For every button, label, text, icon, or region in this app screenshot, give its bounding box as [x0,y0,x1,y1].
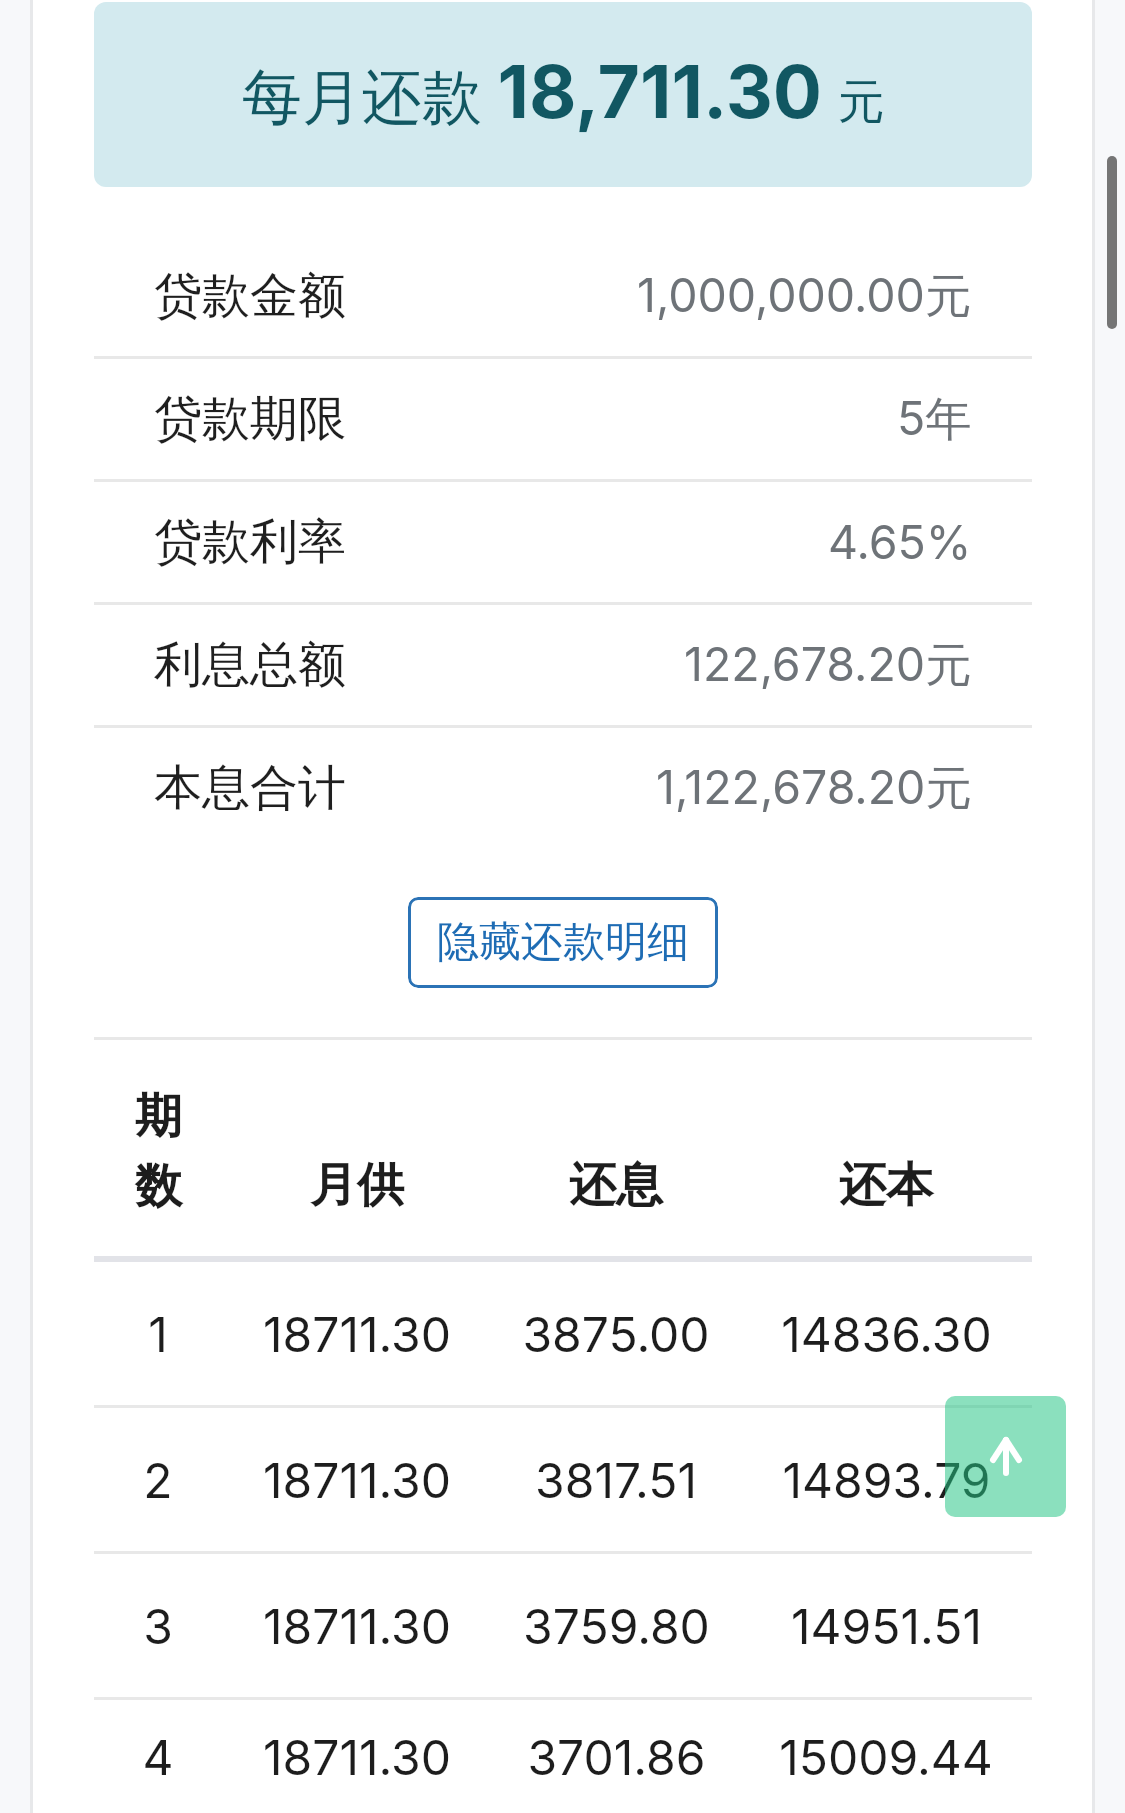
staticText: 1,000,000.00元 [637,267,972,326]
button[interactable]: 本息合计 [94,728,1032,848]
staticText: 14951.51 [791,1597,982,1655]
staticText: 15009.44 [779,1728,993,1786]
staticText: 期 数 [135,1087,182,1215]
staticText: 2 [143,1451,173,1509]
staticText: 1,122,678.20元 [656,759,972,818]
button[interactable]: 2 [94,1408,1032,1551]
staticText: 贷款期限 [154,389,346,449]
button[interactable]: 隐藏还款明细 [408,897,718,988]
button[interactable]: 利息总额 [94,605,1032,725]
button[interactable]: 1 [94,1262,1032,1405]
staticText: 每月还款 18,711.30 元 [242,47,885,136]
staticText: 4.65% [828,514,972,570]
staticText: 122,678.20元 [684,636,972,695]
staticText: 3759.80 [523,1597,710,1655]
staticText: 4 [142,1728,174,1786]
button[interactable]: 贷款利率 [94,482,1032,602]
staticText: 18711.30 [263,1451,451,1509]
staticText: 还本 [839,1156,933,1215]
staticText: 3817.51 [535,1451,697,1509]
staticText: 5年 [897,390,972,449]
button[interactable]: 贷款期限 [94,359,1032,479]
staticText: 18711.30 [263,1728,451,1786]
button[interactable]: Scroll to top [945,1396,1066,1517]
staticText: 18711.30 [263,1597,451,1655]
staticText: 本息合计 [154,758,346,818]
staticText: 贷款利率 [154,512,346,572]
button[interactable]: 3 [94,1554,1032,1697]
staticText: 3875.00 [522,1305,710,1363]
staticText: 贷款金额 [154,266,346,326]
button[interactable]: 贷款金额 [94,236,1032,356]
staticText: 1 [148,1305,168,1363]
staticText: 3 [143,1597,173,1655]
staticText: 3701.86 [527,1728,706,1786]
button[interactable]: 4 [94,1700,1032,1813]
button[interactable]: 每月还款 18,711.30 元 [94,2,1032,187]
staticText: 14893.79 [782,1451,991,1509]
staticText: 隐藏还款明细 [437,916,689,969]
staticText: 月供 [310,1156,404,1215]
staticText: 14836.30 [781,1305,992,1363]
staticText: 18711.30 [263,1305,451,1363]
staticText: 利息总额 [154,635,346,695]
staticText: 还息 [569,1156,663,1215]
